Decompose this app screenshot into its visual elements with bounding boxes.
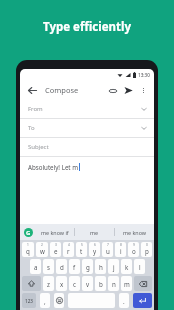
staticText: . (123, 297, 125, 305)
button[interactable]: Back (25, 83, 39, 97)
staticText: a (34, 263, 38, 271)
button[interactable]: 4 (63, 242, 74, 257)
button[interactable]: me know if (36, 224, 74, 240)
button[interactable]: , (40, 293, 50, 308)
button[interactable]: 2 (36, 242, 48, 257)
button[interactable]: More options (138, 85, 149, 96)
staticText: 0 (146, 243, 148, 247)
button[interactable]: Key (22, 293, 36, 308)
staticText: i (120, 247, 122, 255)
staticText: me know if (41, 229, 69, 236)
staticText: Compose (45, 85, 79, 95)
staticText: Subject (28, 143, 49, 151)
button[interactable]: 7 (102, 242, 113, 257)
button[interactable]: 8 (115, 242, 126, 257)
button[interactable]: 3 (50, 242, 61, 257)
button[interactable]: To (20, 119, 154, 137)
staticText: w (40, 247, 45, 255)
staticText: , (44, 297, 46, 305)
staticText: Type efficiently (43, 19, 131, 35)
staticText: f (73, 263, 76, 271)
staticText: 9 (133, 243, 135, 247)
staticText: To (28, 124, 35, 132)
staticText: q (26, 247, 30, 255)
button[interactable]: j (108, 259, 119, 274)
button[interactable]: k (121, 259, 132, 274)
staticText: 2 (41, 243, 43, 247)
button[interactable]: s (43, 259, 54, 274)
staticText: j (113, 263, 115, 271)
staticText: me (90, 229, 99, 236)
button[interactable]: Attach (106, 84, 119, 97)
button[interactable]: z (43, 276, 54, 291)
button[interactable]: 1 (22, 242, 34, 257)
button[interactable]: a (30, 259, 41, 274)
button[interactable]: Emoji (54, 293, 64, 308)
staticText: e (54, 247, 58, 255)
staticText: c (73, 280, 76, 288)
staticText: y (93, 247, 97, 255)
staticText: k (125, 263, 129, 271)
staticText: u (106, 247, 110, 255)
staticText: 13:30 (138, 72, 150, 78)
button[interactable]: f (69, 259, 80, 274)
staticText: n (112, 280, 116, 288)
button[interactable]: c (69, 276, 80, 291)
staticText: z (47, 280, 50, 288)
staticText: d (60, 263, 64, 271)
button[interactable]: 5 (76, 242, 87, 257)
button[interactable]: d (56, 259, 67, 274)
staticText: r (67, 247, 70, 255)
button[interactable]: Key (22, 276, 41, 291)
button[interactable]: g (82, 259, 93, 274)
staticText: m (124, 280, 130, 288)
button[interactable]: b (95, 276, 106, 291)
staticText: 8 (120, 243, 122, 247)
button[interactable]: 0 (141, 242, 152, 257)
staticText: g (86, 263, 90, 271)
button[interactable]: Key (134, 276, 152, 291)
staticText: Absolutely! Let m (28, 163, 78, 171)
staticText: b (99, 280, 103, 288)
button[interactable]: v (82, 276, 93, 291)
staticText: 123 (25, 298, 33, 304)
button[interactable]: me (75, 224, 114, 240)
button[interactable]: h (95, 259, 106, 274)
button[interactable]: Send (122, 84, 135, 97)
staticText: 7 (107, 243, 109, 247)
staticText: 1 (27, 243, 29, 247)
button[interactable]: From (20, 100, 154, 118)
button[interactable]: 6 (89, 242, 100, 257)
staticText: x (60, 280, 64, 288)
staticText: l (139, 263, 141, 271)
button[interactable]: m (121, 276, 132, 291)
staticText: 4 (68, 243, 70, 247)
staticText: 3 (55, 243, 57, 247)
staticText: o (132, 247, 136, 255)
button[interactable]: x (56, 276, 67, 291)
button[interactable]: 9 (128, 242, 139, 257)
staticText: me know (123, 229, 147, 236)
button[interactable]: Enter (133, 293, 152, 308)
button[interactable]: l (134, 259, 145, 274)
staticText: 6 (94, 243, 96, 247)
staticText: v (86, 280, 90, 288)
button[interactable]: Google assistant (20, 224, 36, 240)
button[interactable]: . (119, 293, 129, 308)
button[interactable]: me know (115, 224, 154, 240)
staticText: h (99, 263, 103, 271)
staticText: s (47, 263, 50, 271)
staticText: p (145, 247, 149, 255)
staticText: From (28, 105, 43, 113)
button[interactable]: Subject (20, 138, 154, 156)
staticText: 5 (81, 243, 83, 247)
staticText: G (26, 229, 31, 237)
button[interactable]: n (108, 276, 119, 291)
staticText: t (80, 247, 83, 255)
